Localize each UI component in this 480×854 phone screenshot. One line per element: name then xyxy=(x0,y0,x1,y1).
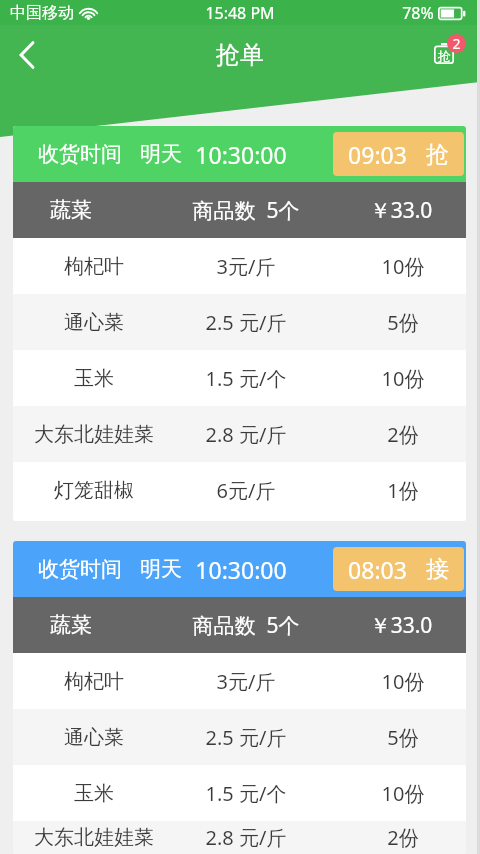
staticText: 枸杞叶 xyxy=(21,254,167,279)
staticText: 3元/斤 xyxy=(167,253,325,280)
staticText: 5份 xyxy=(340,309,466,336)
staticText: 2.5 元/斤 xyxy=(167,724,325,751)
staticText: 10份 xyxy=(340,668,466,695)
staticText: 2 xyxy=(452,34,461,53)
staticText: 商品数 5个 xyxy=(167,196,325,225)
staticText: 10份 xyxy=(340,780,466,807)
staticText: 收货时间 xyxy=(38,556,122,582)
staticText: 中国移动 xyxy=(10,3,74,23)
staticText: 5份 xyxy=(340,724,466,751)
staticText: 2.8 元/斤 xyxy=(167,421,325,448)
staticText: 1份 xyxy=(340,477,466,504)
button[interactable]: 09:03 xyxy=(333,132,464,176)
button[interactable]: 收货时间 xyxy=(13,541,466,854)
staticText: 抢 xyxy=(438,48,451,64)
staticText: 枸杞叶 xyxy=(21,669,167,694)
staticText: 大东北娃娃菜 xyxy=(21,422,167,447)
button[interactable]: 08:03 xyxy=(333,547,464,591)
staticText: 通心菜 xyxy=(21,725,167,750)
staticText: 10份 xyxy=(340,253,466,280)
button[interactable]: Grab orders xyxy=(424,25,472,73)
staticText: 抢 xyxy=(426,140,449,169)
staticText: 蔬菜 xyxy=(50,197,167,223)
staticText: 蔬菜 xyxy=(50,612,167,638)
staticText: 接 xyxy=(426,555,449,584)
staticText: 通心菜 xyxy=(21,310,167,335)
button[interactable]: Back xyxy=(0,25,54,85)
staticText: 2份 xyxy=(340,421,466,448)
staticText: 明天 xyxy=(140,141,182,167)
staticText: 10:30:00 xyxy=(195,139,287,170)
staticText: 78% xyxy=(402,2,434,24)
staticText: 1.5 元/个 xyxy=(167,780,325,807)
staticText: 09:03 xyxy=(348,139,407,170)
staticText: 抢单 xyxy=(216,40,264,70)
staticText: 08:03 xyxy=(348,554,407,585)
staticText: 玉米 xyxy=(21,366,167,391)
staticText: 3元/斤 xyxy=(167,668,325,695)
staticText: 10:30:00 xyxy=(195,554,287,585)
staticText: 大东北娃娃菜 xyxy=(21,825,167,850)
button[interactable]: 收货时间 xyxy=(13,126,466,521)
staticText: 15:48 PM xyxy=(205,2,275,24)
staticText: 2.5 元/斤 xyxy=(167,309,325,336)
staticText: 6元/斤 xyxy=(167,477,325,504)
staticText: 10份 xyxy=(340,365,466,392)
staticText: ￥33.0 xyxy=(336,611,466,640)
staticText: 商品数 5个 xyxy=(167,611,325,640)
staticText: 明天 xyxy=(140,556,182,582)
staticText: 1.5 元/个 xyxy=(167,365,325,392)
staticText: 2.8 元/斤 xyxy=(167,824,325,851)
staticText: 收货时间 xyxy=(38,141,122,167)
staticText: 灯笼甜椒 xyxy=(21,478,167,503)
staticText: 玉米 xyxy=(21,781,167,806)
staticText: 2份 xyxy=(340,824,466,851)
staticText: ￥33.0 xyxy=(336,196,466,225)
